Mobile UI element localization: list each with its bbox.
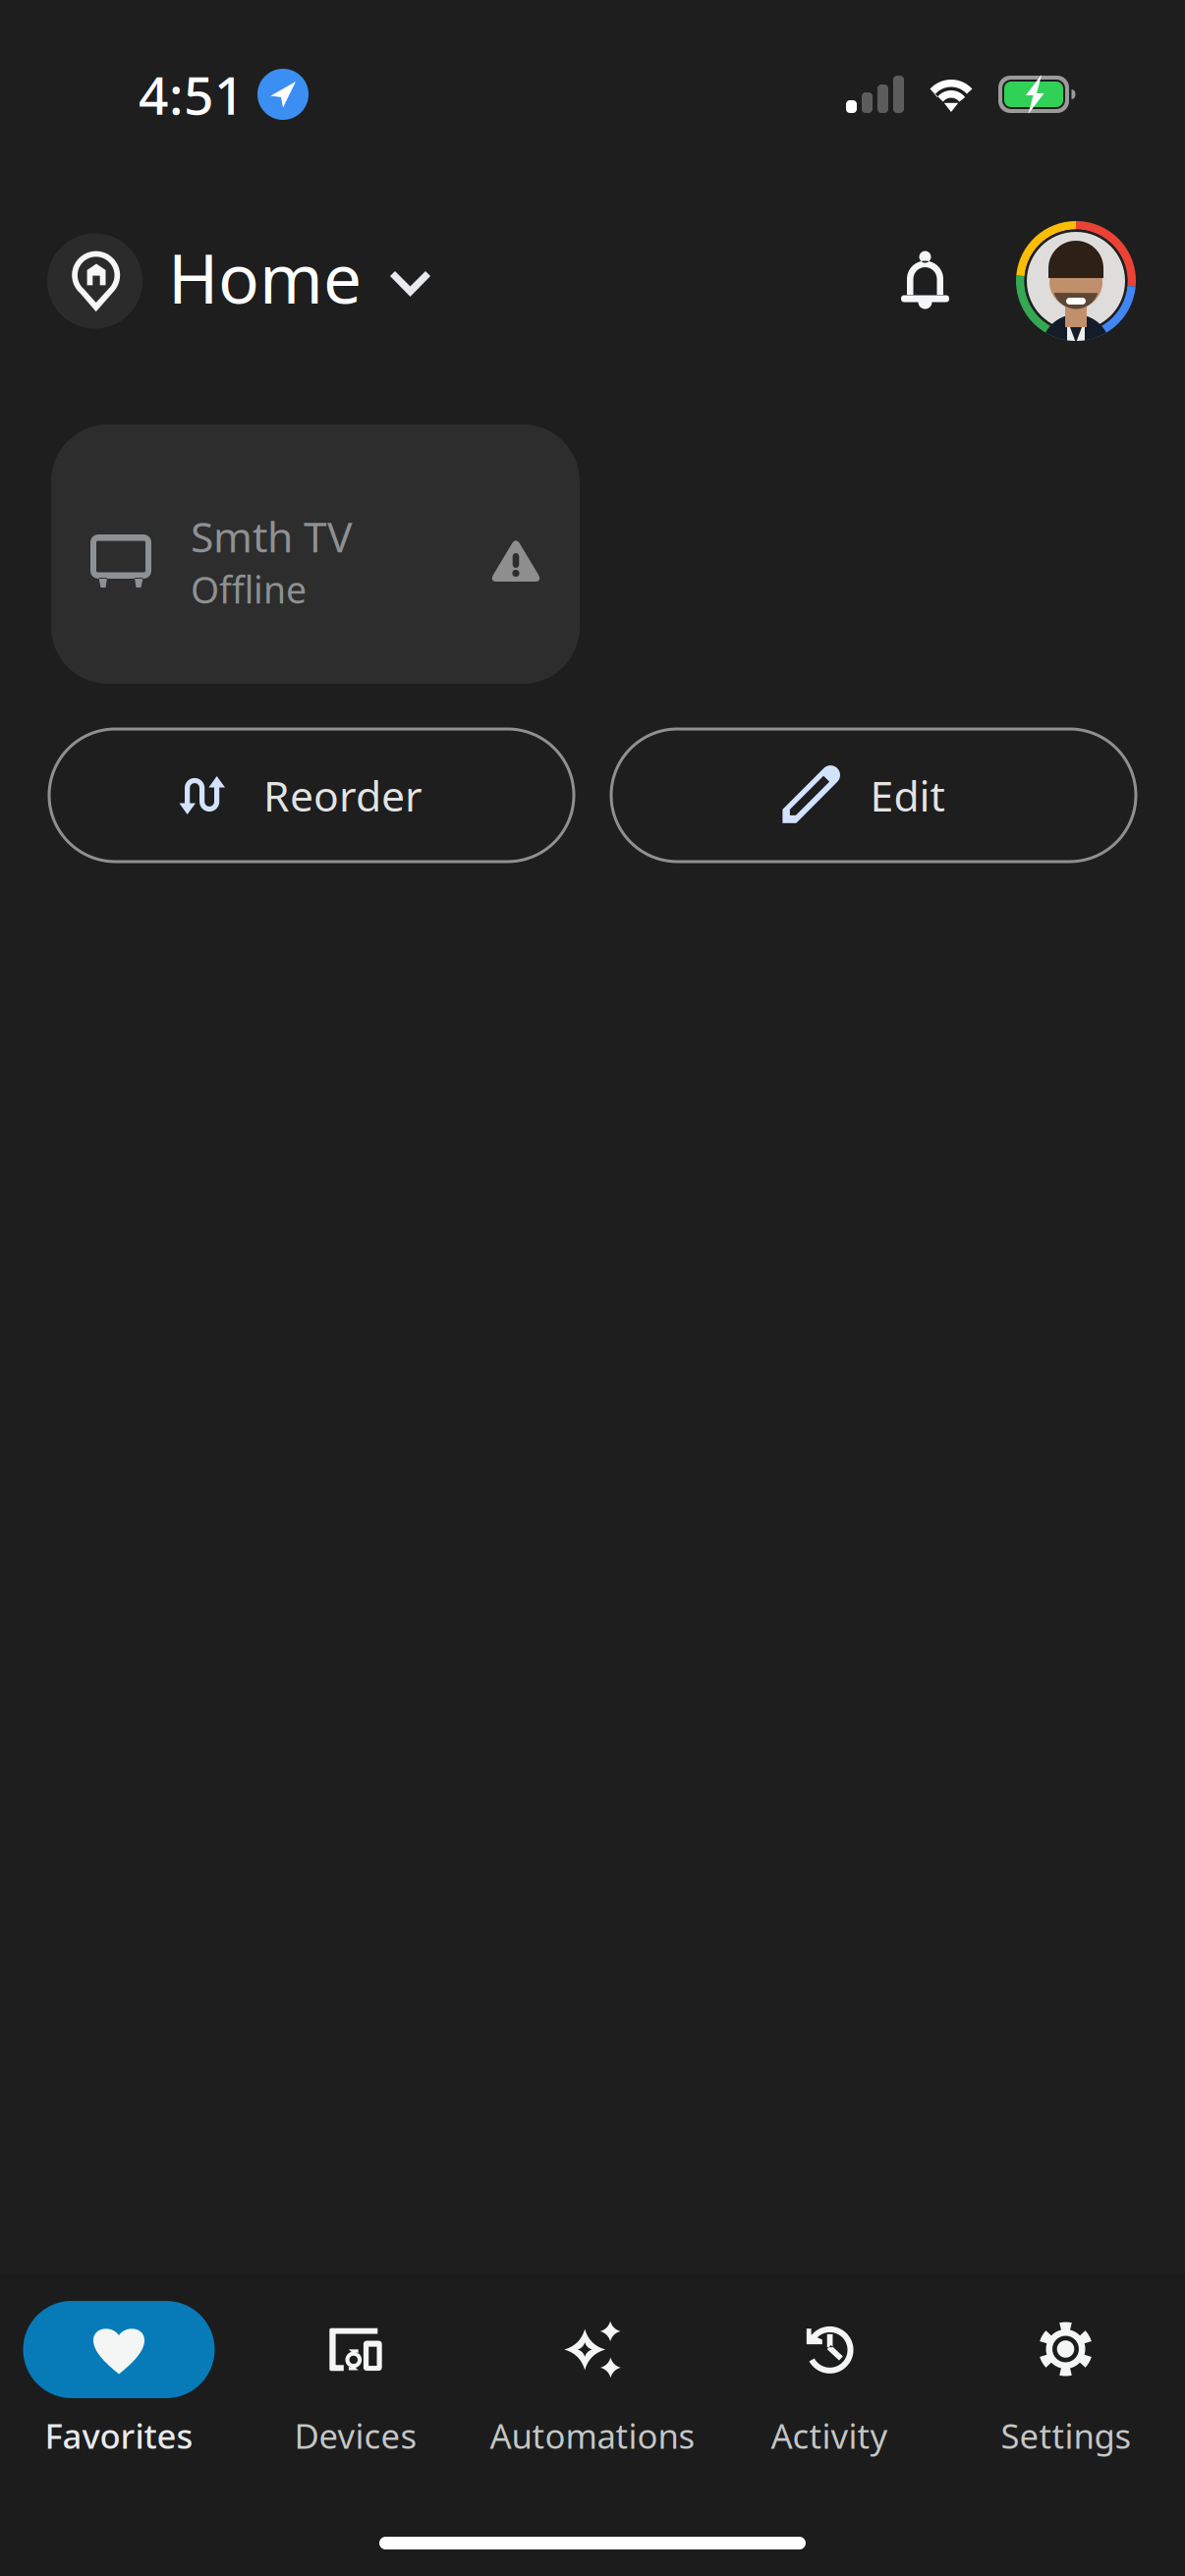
staticText: Offline <box>191 565 307 614</box>
staticText: Edit <box>870 767 945 823</box>
button[interactable]: Settings <box>948 2301 1185 2488</box>
button[interactable]: Favorites <box>0 2301 237 2488</box>
button[interactable]: Smth TV <box>51 424 580 684</box>
button[interactable]: Activity <box>711 2301 948 2488</box>
staticText: Home <box>168 232 362 322</box>
button[interactable]: Notifications <box>901 251 949 311</box>
staticText: Smth TV <box>191 508 353 564</box>
button[interactable]: Home <box>47 232 448 330</box>
staticText: Activity <box>771 2413 888 2458</box>
staticText: Settings <box>1001 2413 1131 2458</box>
button[interactable]: Automations <box>474 2301 711 2488</box>
staticText: Automations <box>490 2413 695 2458</box>
staticText: 4:51 <box>139 60 245 129</box>
button[interactable]: Edit <box>611 729 1136 862</box>
staticText: Favorites <box>45 2413 193 2458</box>
button[interactable]: Account <box>1016 221 1136 341</box>
staticText: Devices <box>294 2413 417 2458</box>
staticText: Reorder <box>263 767 423 823</box>
button[interactable]: Devices <box>237 2301 474 2488</box>
button[interactable]: Reorder <box>49 729 574 862</box>
